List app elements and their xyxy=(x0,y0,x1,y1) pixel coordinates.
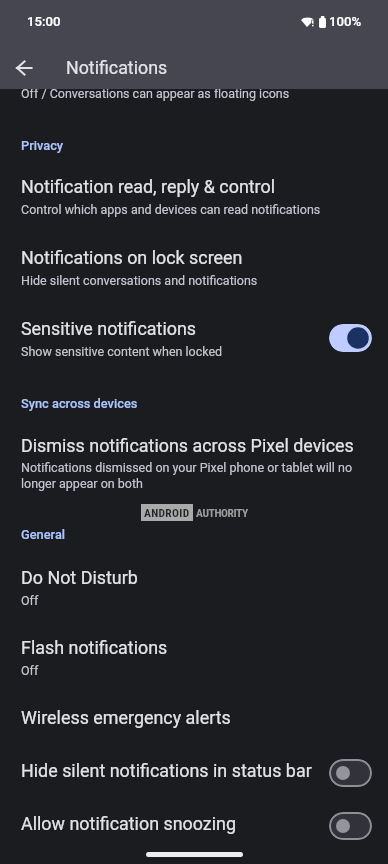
button[interactable] xyxy=(0,699,388,739)
staticText: ANDROID xyxy=(144,506,190,519)
button[interactable] xyxy=(0,559,388,617)
button[interactable] xyxy=(0,629,388,687)
staticText: Sync across devices xyxy=(21,396,138,411)
staticText: Hide silent notifications in status bar xyxy=(21,760,312,781)
staticText: General xyxy=(21,527,66,542)
staticText: Off xyxy=(21,593,39,608)
staticText: Dismiss notifications across Pixel devic… xyxy=(21,435,354,456)
staticText: Notification read, reply & control xyxy=(21,176,276,197)
staticText: Privacy xyxy=(21,138,64,153)
staticText: Notifications dismissed on your Pixel ph… xyxy=(21,460,358,492)
button[interactable] xyxy=(0,805,388,845)
button[interactable]: Navigate back xyxy=(4,48,44,88)
staticText: Allow notification snoozing xyxy=(21,813,237,834)
staticText: Show sensitive content when locked xyxy=(21,344,223,359)
button[interactable] xyxy=(0,310,388,368)
staticText: Notifications xyxy=(66,57,168,78)
button[interactable] xyxy=(0,427,388,501)
button[interactable] xyxy=(0,168,388,226)
staticText: Notifications on lock screen xyxy=(21,247,243,268)
button[interactable]: Toggle, off xyxy=(329,812,372,840)
button[interactable]: Toggle, off xyxy=(329,759,372,787)
staticText: 100% xyxy=(329,14,362,29)
staticText: 15:00 xyxy=(27,14,61,29)
staticText: AUTHORITY xyxy=(196,506,248,519)
staticText: Wireless emergency alerts xyxy=(21,707,231,728)
button[interactable] xyxy=(0,239,388,297)
staticText: Off / Conversations can appear as floati… xyxy=(21,86,290,101)
staticText: Hide silent conversations and notificati… xyxy=(21,273,258,288)
staticText: Flash notifications xyxy=(21,637,168,658)
staticText: Off xyxy=(21,663,39,678)
button[interactable]: Toggle, on xyxy=(329,324,372,352)
staticText: Do Not Disturb xyxy=(21,567,138,588)
staticText: Sensitive notifications xyxy=(21,318,197,339)
button[interactable] xyxy=(0,752,388,792)
staticText: Control which apps and devices can read … xyxy=(21,202,321,217)
